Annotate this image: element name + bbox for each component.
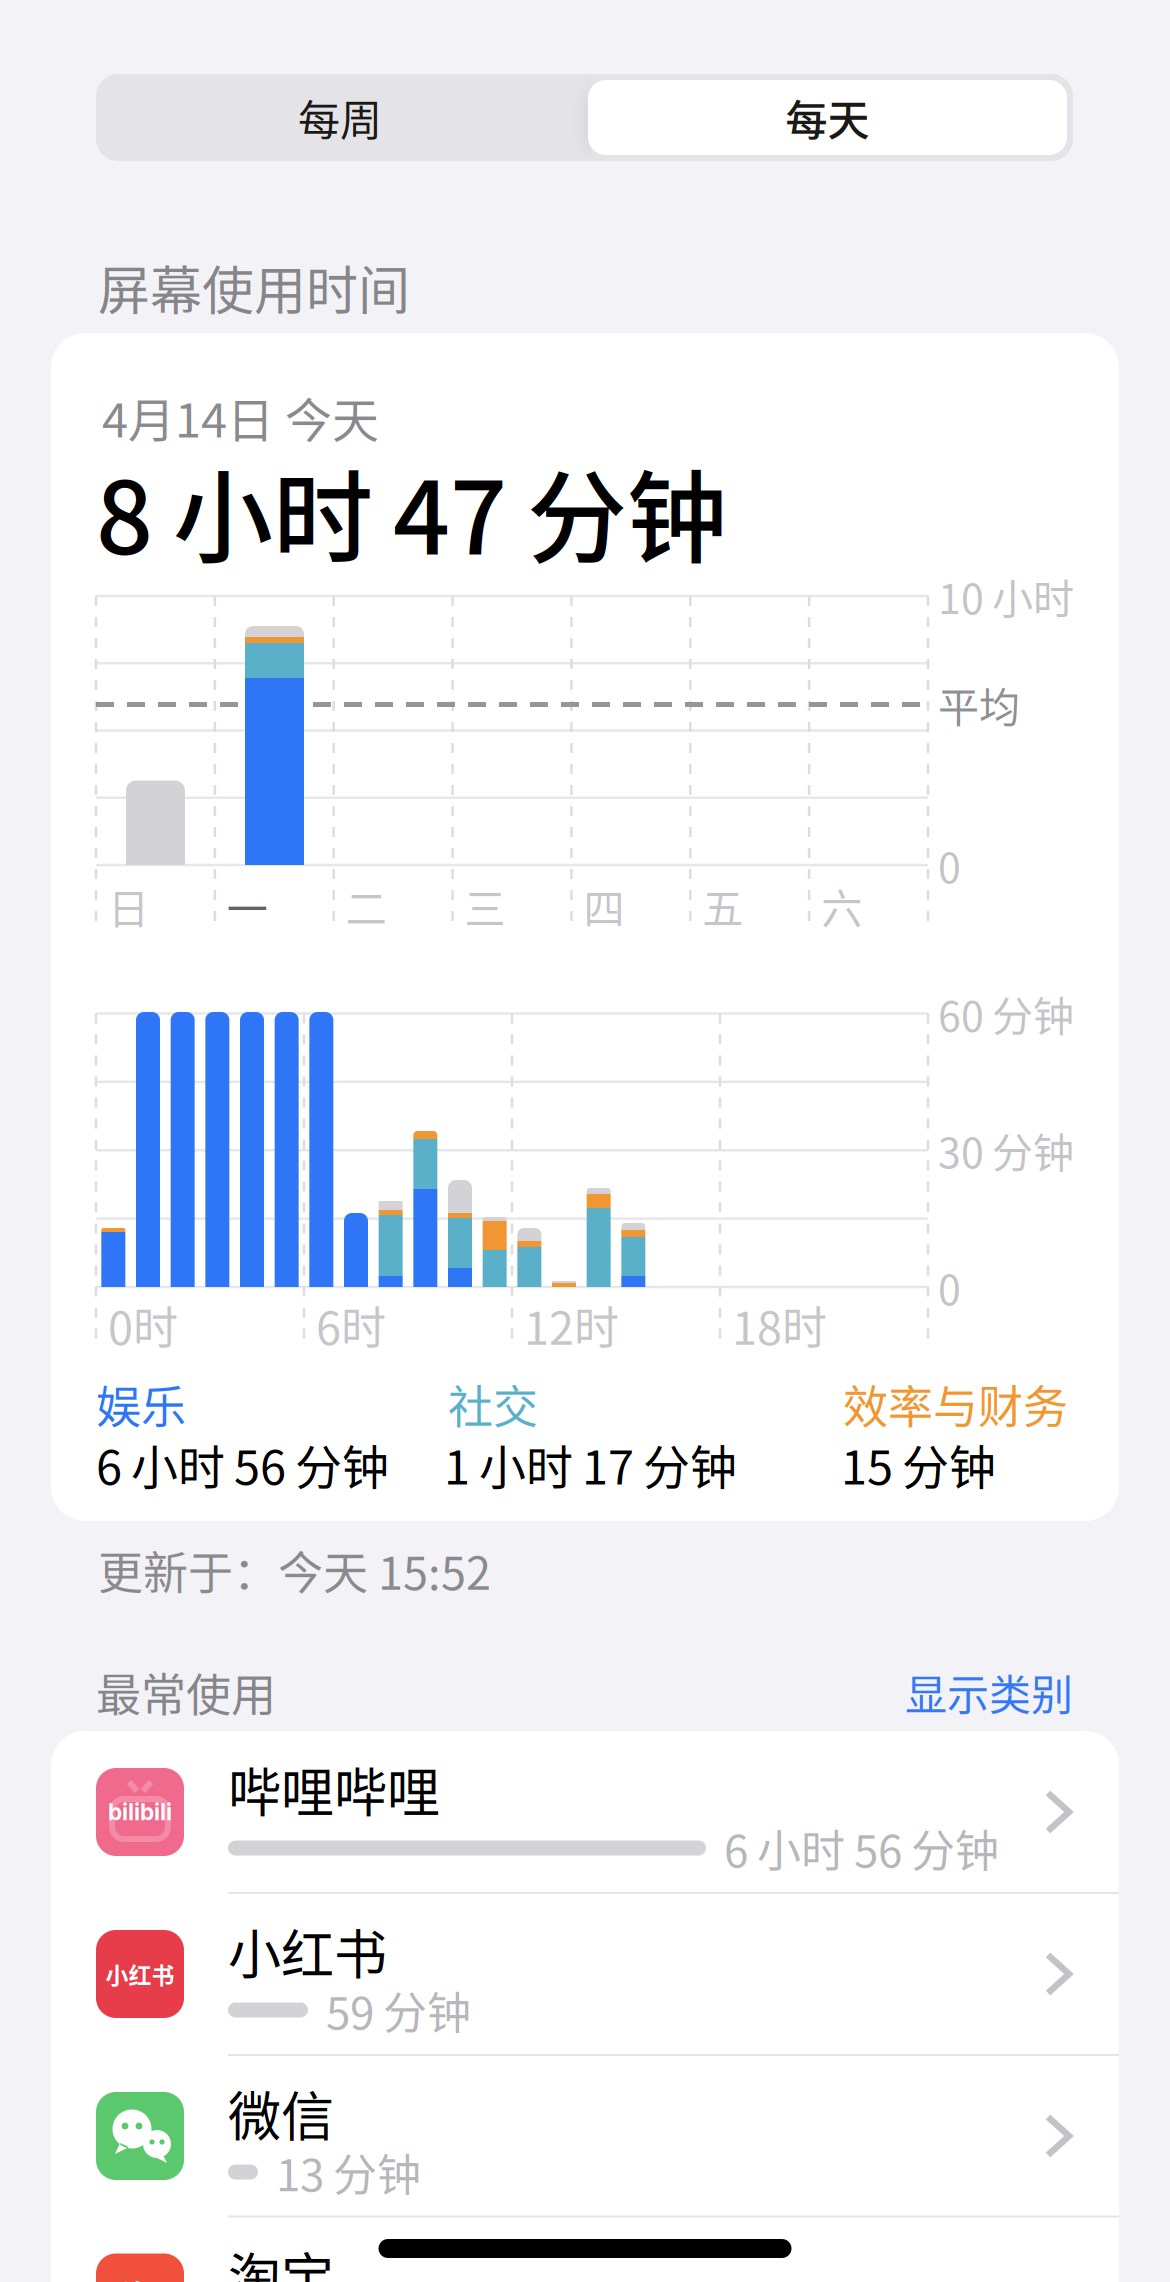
staticText: 五 xyxy=(702,876,743,936)
staticText: 4月14日 今天 xyxy=(102,383,379,451)
staticText: 60 分钟 xyxy=(938,984,1074,1043)
staticText: 屏幕使用时间 xyxy=(98,249,410,325)
staticText: 每周 xyxy=(298,87,382,148)
staticText: 社交 xyxy=(448,1371,538,1437)
staticText: 二 xyxy=(346,876,387,936)
staticText: 12时 xyxy=(524,1292,619,1358)
staticText: 1 小时 17 分钟 xyxy=(444,1430,737,1498)
staticText: 6 小时 56 分钟 xyxy=(96,1430,389,1498)
staticText: 平均 xyxy=(938,675,1020,734)
staticText: 0 xyxy=(938,835,961,895)
staticText: 淘 xyxy=(120,2268,160,2282)
staticText: 哔哩哔哩 xyxy=(228,1751,440,1827)
staticText: 娱乐 xyxy=(96,1371,186,1437)
staticText: 更新于：今天 15:52 xyxy=(98,1537,491,1603)
staticText: 59 分钟 xyxy=(326,1978,471,2042)
staticText: 18时 xyxy=(732,1292,827,1358)
staticText: 15 分钟 xyxy=(841,1430,996,1498)
staticText: 小红书 xyxy=(228,1913,387,1989)
staticText: 6 小时 56 分钟 xyxy=(724,1816,999,1880)
staticText: 三 xyxy=(465,876,506,936)
staticText: 效率与财务 xyxy=(843,1371,1068,1437)
staticText: bilibili xyxy=(108,1798,172,1826)
staticText: 一 xyxy=(227,876,268,936)
staticText: 淘宝 xyxy=(228,2236,334,2282)
staticText: 四 xyxy=(583,876,624,936)
staticText: 微信 xyxy=(228,2075,334,2151)
staticText: 30 分钟 xyxy=(938,1120,1074,1180)
staticText: 10 小时 xyxy=(938,566,1074,626)
staticText: 六 xyxy=(821,876,862,936)
staticText: 每天 xyxy=(785,87,869,148)
staticText: 小红书 xyxy=(105,1957,174,1991)
staticText: 6时 xyxy=(316,1292,386,1358)
staticText: 最常使用 xyxy=(96,1659,276,1725)
staticText: 0 xyxy=(938,1257,961,1317)
staticText: 日 xyxy=(108,876,149,936)
staticText: 13 分钟 xyxy=(276,2140,421,2204)
staticText: 显示类别 xyxy=(905,1662,1073,1722)
staticText: 0时 xyxy=(108,1292,178,1358)
staticText: 8 小时 47 分钟 xyxy=(96,439,727,583)
